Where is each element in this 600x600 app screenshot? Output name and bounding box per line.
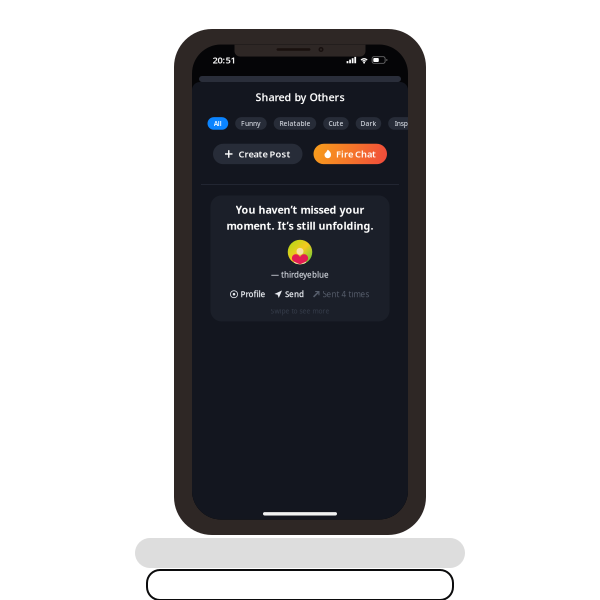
staticText: Funny <box>241 119 261 128</box>
staticText: Send <box>285 289 304 299</box>
staticText: Relatable <box>279 119 310 128</box>
button[interactable]: All <box>207 117 228 130</box>
staticText: — thirdeyeblue <box>271 269 329 280</box>
staticText: Swipe to see more <box>270 306 329 315</box>
button[interactable]: Funny <box>235 117 267 130</box>
staticText: Sent 4 times <box>322 289 369 299</box>
staticText: Cute <box>328 119 343 128</box>
button[interactable]: Cute <box>323 117 349 130</box>
staticText: moment. It’s still unfolding. <box>226 219 373 233</box>
button[interactable]: Send <box>274 289 304 299</box>
staticText: Fire Chat <box>336 148 376 160</box>
button[interactable]: Insp <box>388 117 414 130</box>
staticText: Profile <box>240 289 265 299</box>
button[interactable]: Relatable <box>274 117 316 130</box>
staticText: Create Post <box>238 148 290 160</box>
staticText: Insp <box>395 119 408 128</box>
button[interactable]: Create Post <box>213 144 302 164</box>
button[interactable]: Dark <box>356 117 381 130</box>
staticText: Dark <box>360 119 376 128</box>
staticText: Shared by Others <box>255 90 344 104</box>
button[interactable]: Wild <box>421 117 447 130</box>
button[interactable]: Fire Chat <box>313 144 387 164</box>
button[interactable]: Profile <box>230 289 265 299</box>
staticText: You haven’t missed your <box>235 202 364 217</box>
staticText: All <box>214 119 222 128</box>
staticText: 20:51 <box>212 54 235 66</box>
